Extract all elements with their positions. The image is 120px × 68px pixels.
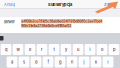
button[interactable]: Zapisz bbox=[0, 0, 116, 9]
staticText: o bbox=[101, 47, 103, 52]
staticText: p bbox=[113, 47, 115, 52]
button[interactable]: d bbox=[31, 56, 41, 67]
staticText: y bbox=[65, 47, 67, 52]
button[interactable]: s bbox=[19, 56, 29, 67]
button[interactable]: p bbox=[109, 44, 119, 55]
staticText: Anuluj bbox=[4, 2, 15, 7]
staticText: e bbox=[29, 47, 31, 52]
staticText: Zapisz bbox=[104, 2, 116, 7]
button[interactable]: f bbox=[43, 56, 53, 67]
staticText: h bbox=[71, 60, 73, 64]
staticText: g bbox=[59, 60, 61, 64]
button[interactable]: Anuluj bbox=[0, 0, 28, 9]
button[interactable]: r bbox=[37, 44, 47, 55]
staticText: a bbox=[11, 60, 13, 64]
staticText: r bbox=[41, 47, 43, 52]
staticText: Subskrypcja bbox=[48, 2, 72, 7]
button[interactable]: i bbox=[85, 44, 95, 55]
staticText: 90fc51e8a2736d4b0ce9185af23 bbox=[21, 24, 71, 28]
button[interactable]: j bbox=[79, 56, 89, 67]
button[interactable]: a bbox=[7, 56, 17, 67]
staticText: w bbox=[16, 47, 19, 52]
staticText: u bbox=[77, 47, 79, 52]
button[interactable]: q bbox=[1, 44, 11, 55]
button[interactable]: g bbox=[55, 56, 65, 67]
button[interactable]: l bbox=[103, 56, 113, 67]
staticText: a4f09b2ce781d5c36ab8e024f7913d6085c2ae17… bbox=[21, 19, 102, 23]
button[interactable]: t bbox=[49, 44, 59, 55]
button[interactable]: h bbox=[67, 56, 77, 67]
button[interactable]: k bbox=[91, 56, 101, 67]
button[interactable]: u bbox=[73, 44, 83, 55]
staticText: Serwer bbox=[3, 20, 14, 24]
button[interactable]: y bbox=[61, 44, 71, 55]
staticText: s bbox=[23, 60, 25, 64]
button[interactable]: e bbox=[25, 44, 35, 55]
button[interactable]: o bbox=[97, 44, 107, 55]
staticText: d bbox=[35, 60, 37, 64]
staticText: q bbox=[5, 47, 7, 52]
button[interactable]: w bbox=[13, 44, 23, 55]
staticText: k bbox=[95, 60, 97, 64]
